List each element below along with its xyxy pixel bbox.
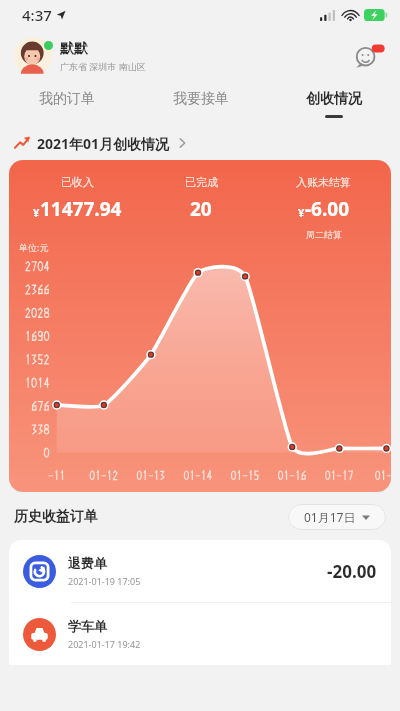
staticText: 2021-01-19 17:05	[68, 575, 141, 587]
button[interactable]: 已收入	[9, 160, 391, 492]
staticText: ¥	[33, 205, 40, 220]
button[interactable]: 创收情况	[267, 82, 400, 126]
button[interactable]: 默默	[14, 37, 146, 75]
staticText: 20	[190, 196, 212, 222]
staticText: -20.00	[327, 560, 377, 583]
staticText: -6.00	[305, 196, 350, 222]
staticText: 广东省 深圳市 南山区	[60, 60, 146, 72]
staticText: 01月17日	[304, 509, 356, 525]
staticText: 4:37	[22, 5, 52, 25]
staticText: 我要接单	[173, 90, 229, 108]
staticText: 创收情况	[306, 90, 362, 108]
button[interactable]: 我的订单	[0, 82, 134, 126]
staticText: 2021年01月创收情况	[37, 134, 170, 153]
staticText: 11477.94	[40, 196, 122, 222]
button[interactable]: 01月17日	[288, 504, 386, 530]
staticText: 退费单	[68, 555, 107, 571]
staticText: ¥	[298, 205, 305, 220]
button[interactable]: 退费单	[9, 540, 391, 602]
staticText: 入账未结算	[296, 175, 351, 189]
staticText: 已完成	[185, 175, 218, 189]
button[interactable]: Messages	[352, 39, 386, 73]
staticText: 周二结算	[306, 229, 342, 240]
button[interactable]: 学车单	[9, 603, 391, 665]
staticText: 我的订单	[39, 90, 95, 108]
staticText: 学车单	[68, 618, 107, 634]
staticText: 历史收益订单	[14, 508, 98, 526]
button[interactable]: 2021年01月创收情况	[0, 126, 400, 160]
staticText: 2021-01-17 19:42	[68, 638, 141, 650]
staticText: 单位:元	[19, 241, 49, 253]
button[interactable]: 我要接单	[134, 82, 267, 126]
staticText: 已收入	[61, 175, 94, 189]
staticText: 默默	[60, 40, 88, 58]
